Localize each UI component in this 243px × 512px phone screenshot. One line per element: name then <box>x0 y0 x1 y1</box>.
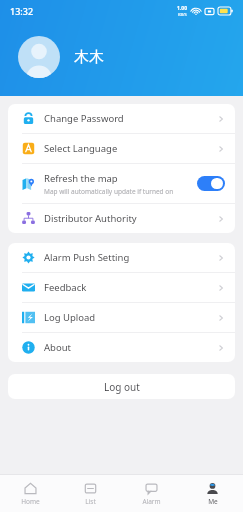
staticText: Change Password <box>44 112 124 125</box>
staticText: Me <box>208 497 218 506</box>
staticText: Log out <box>104 380 140 394</box>
button[interactable]: 木木 <box>18 36 104 78</box>
staticText: KB/S <box>178 12 187 17</box>
button[interactable]: List <box>60 475 121 512</box>
staticText: Map will automatically update if turned … <box>44 187 174 196</box>
button[interactable]: About <box>8 333 235 362</box>
button[interactable]: Distributor Authority <box>8 204 235 233</box>
button[interactable]: Log out <box>8 374 235 399</box>
staticText: Alarm <box>142 497 161 506</box>
button[interactable]: Refresh the map toggle <box>197 176 225 191</box>
button[interactable]: Alarm Push Setting <box>8 243 235 272</box>
staticText: Select Language <box>44 142 118 155</box>
staticText: 1.00 <box>177 5 187 12</box>
staticText: Log Upload <box>44 311 96 324</box>
staticText: Distributor Authority <box>44 212 137 225</box>
staticText: Refresh the map <box>44 172 118 185</box>
staticText: 木木 <box>74 48 104 67</box>
button[interactable]: Select Language <box>8 134 235 163</box>
staticText: Feedback <box>44 281 87 294</box>
staticText: Home <box>21 497 40 506</box>
button[interactable]: Home <box>0 475 60 512</box>
button[interactable]: Log Upload <box>8 303 235 332</box>
button[interactable]: Me <box>182 475 243 512</box>
staticText: Alarm Push Setting <box>44 251 130 264</box>
button[interactable]: Change Password <box>8 104 235 133</box>
button[interactable]: Feedback <box>8 273 235 302</box>
staticText: List <box>85 497 96 506</box>
staticText: 13:32 <box>10 5 34 17</box>
staticText: About <box>44 341 71 354</box>
button[interactable]: Alarm <box>121 475 182 512</box>
button[interactable]: Refresh the map <box>8 164 235 203</box>
